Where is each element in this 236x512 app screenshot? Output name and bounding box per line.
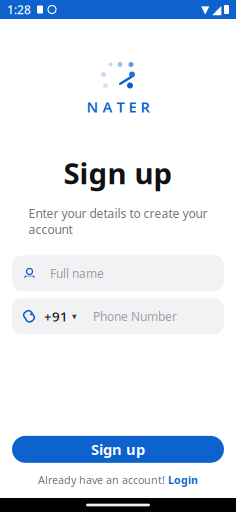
staticText: ▼ xyxy=(201,3,209,15)
button[interactable]: Full name xyxy=(12,255,224,291)
staticText: N A T E R xyxy=(86,97,149,116)
staticText: Login xyxy=(168,473,198,487)
staticText: 1:28 xyxy=(7,1,31,17)
button[interactable]: Sign up xyxy=(12,436,224,463)
staticText: Sign up xyxy=(63,153,172,192)
staticText: ◢ xyxy=(212,3,221,16)
staticText: Sign up xyxy=(91,440,145,459)
button[interactable]: +91 xyxy=(12,298,224,334)
staticText: ▾ xyxy=(72,311,77,322)
staticText: Already have an account! xyxy=(38,473,165,487)
staticText: Full name xyxy=(50,265,104,281)
staticText: Enter your details to create your accoun… xyxy=(28,205,207,237)
staticText: Phone Number xyxy=(93,308,177,324)
staticText: +91 xyxy=(44,307,68,325)
button[interactable]: Already have an account! xyxy=(38,473,198,487)
